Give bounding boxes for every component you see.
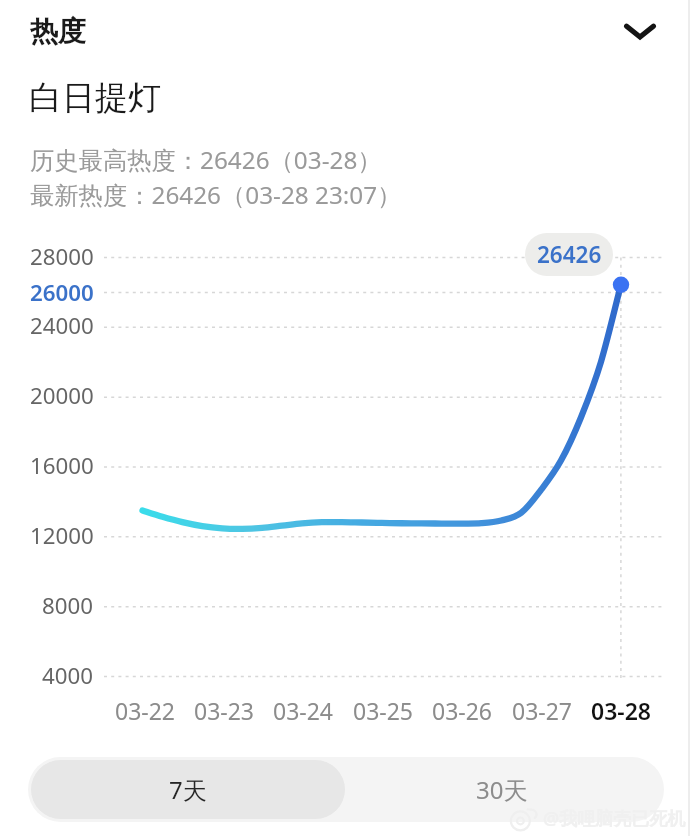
staticText: 8000 [42,590,94,620]
staticText: 26426 [537,239,602,270]
staticText: 12000 [30,520,94,550]
staticText: 03-23 [194,695,255,725]
staticText: 20000 [30,380,94,410]
staticText: 最新热度：26426（03-28 23:07） [30,178,402,211]
staticText: 03-24 [273,695,334,725]
staticText: 03-22 [115,695,176,725]
button[interactable]: 7天 [31,760,345,819]
staticText: 03-26 [432,695,493,725]
staticText: 白日提灯 [29,77,161,119]
staticText: 30天 [476,773,528,806]
staticText: 03-25 [353,695,414,725]
staticText: 28000 [30,241,94,271]
staticText: 03-27 [512,695,573,725]
staticText: 26000 [30,277,94,307]
staticText: 24000 [30,310,94,340]
staticText: 16000 [30,450,94,480]
staticText: 4000 [42,660,94,690]
button[interactable]: Collapse [609,1,671,63]
staticText: 热度 [30,14,86,49]
staticText: 03-28 [591,695,651,725]
staticText: 历史最高热度：26426（03-28） [30,143,382,176]
staticText: 7天 [169,773,207,806]
staticText: @我哩脑壳已死机 [543,806,686,831]
button[interactable]: 30天 [345,760,659,819]
